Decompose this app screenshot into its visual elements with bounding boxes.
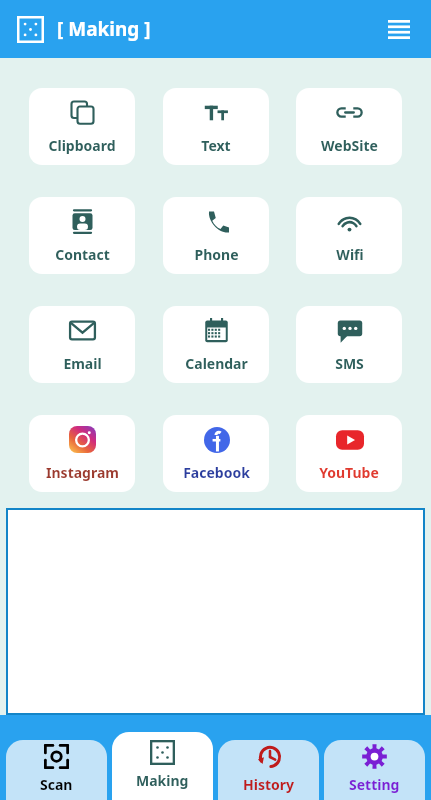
staticText: Text	[201, 136, 231, 155]
button[interactable]: Calendar	[163, 306, 269, 383]
button[interactable]: Clipboard	[29, 88, 135, 165]
staticText: Facebook	[183, 463, 250, 482]
staticText: Phone	[194, 245, 239, 264]
staticText: SMS	[335, 354, 364, 373]
staticText: Calendar	[185, 354, 248, 373]
button[interactable]: Wifi	[296, 197, 402, 274]
button[interactable]: SMS	[296, 306, 402, 383]
staticText: Wifi	[336, 245, 364, 264]
staticText: Making	[136, 771, 189, 790]
button[interactable]: Email	[29, 306, 135, 383]
button[interactable]: Scan	[6, 740, 107, 800]
staticText: Clipboard	[48, 136, 116, 155]
button[interactable]: Facebook	[163, 415, 269, 492]
staticText: YouTube	[319, 463, 379, 482]
button[interactable]: Instagram	[29, 415, 135, 492]
staticText: WebSite	[321, 136, 378, 155]
staticText: Email	[63, 354, 102, 373]
staticText: Contact	[55, 245, 110, 264]
button[interactable]: Text	[163, 88, 269, 165]
button[interactable]: Making	[112, 732, 213, 800]
button[interactable]: Setting	[324, 740, 425, 800]
staticText: [ Making ]	[57, 16, 151, 42]
staticText: Scan	[40, 775, 73, 794]
staticText: Setting	[349, 775, 400, 794]
button[interactable]: WebSite	[296, 88, 402, 165]
button[interactable]: Menu	[381, 11, 417, 47]
button[interactable]: Contact	[29, 197, 135, 274]
staticText: Instagram	[46, 463, 119, 482]
button[interactable]: Phone	[163, 197, 269, 274]
button[interactable]: History	[218, 740, 319, 800]
staticText: History	[243, 775, 295, 794]
button[interactable]: YouTube	[296, 415, 402, 492]
